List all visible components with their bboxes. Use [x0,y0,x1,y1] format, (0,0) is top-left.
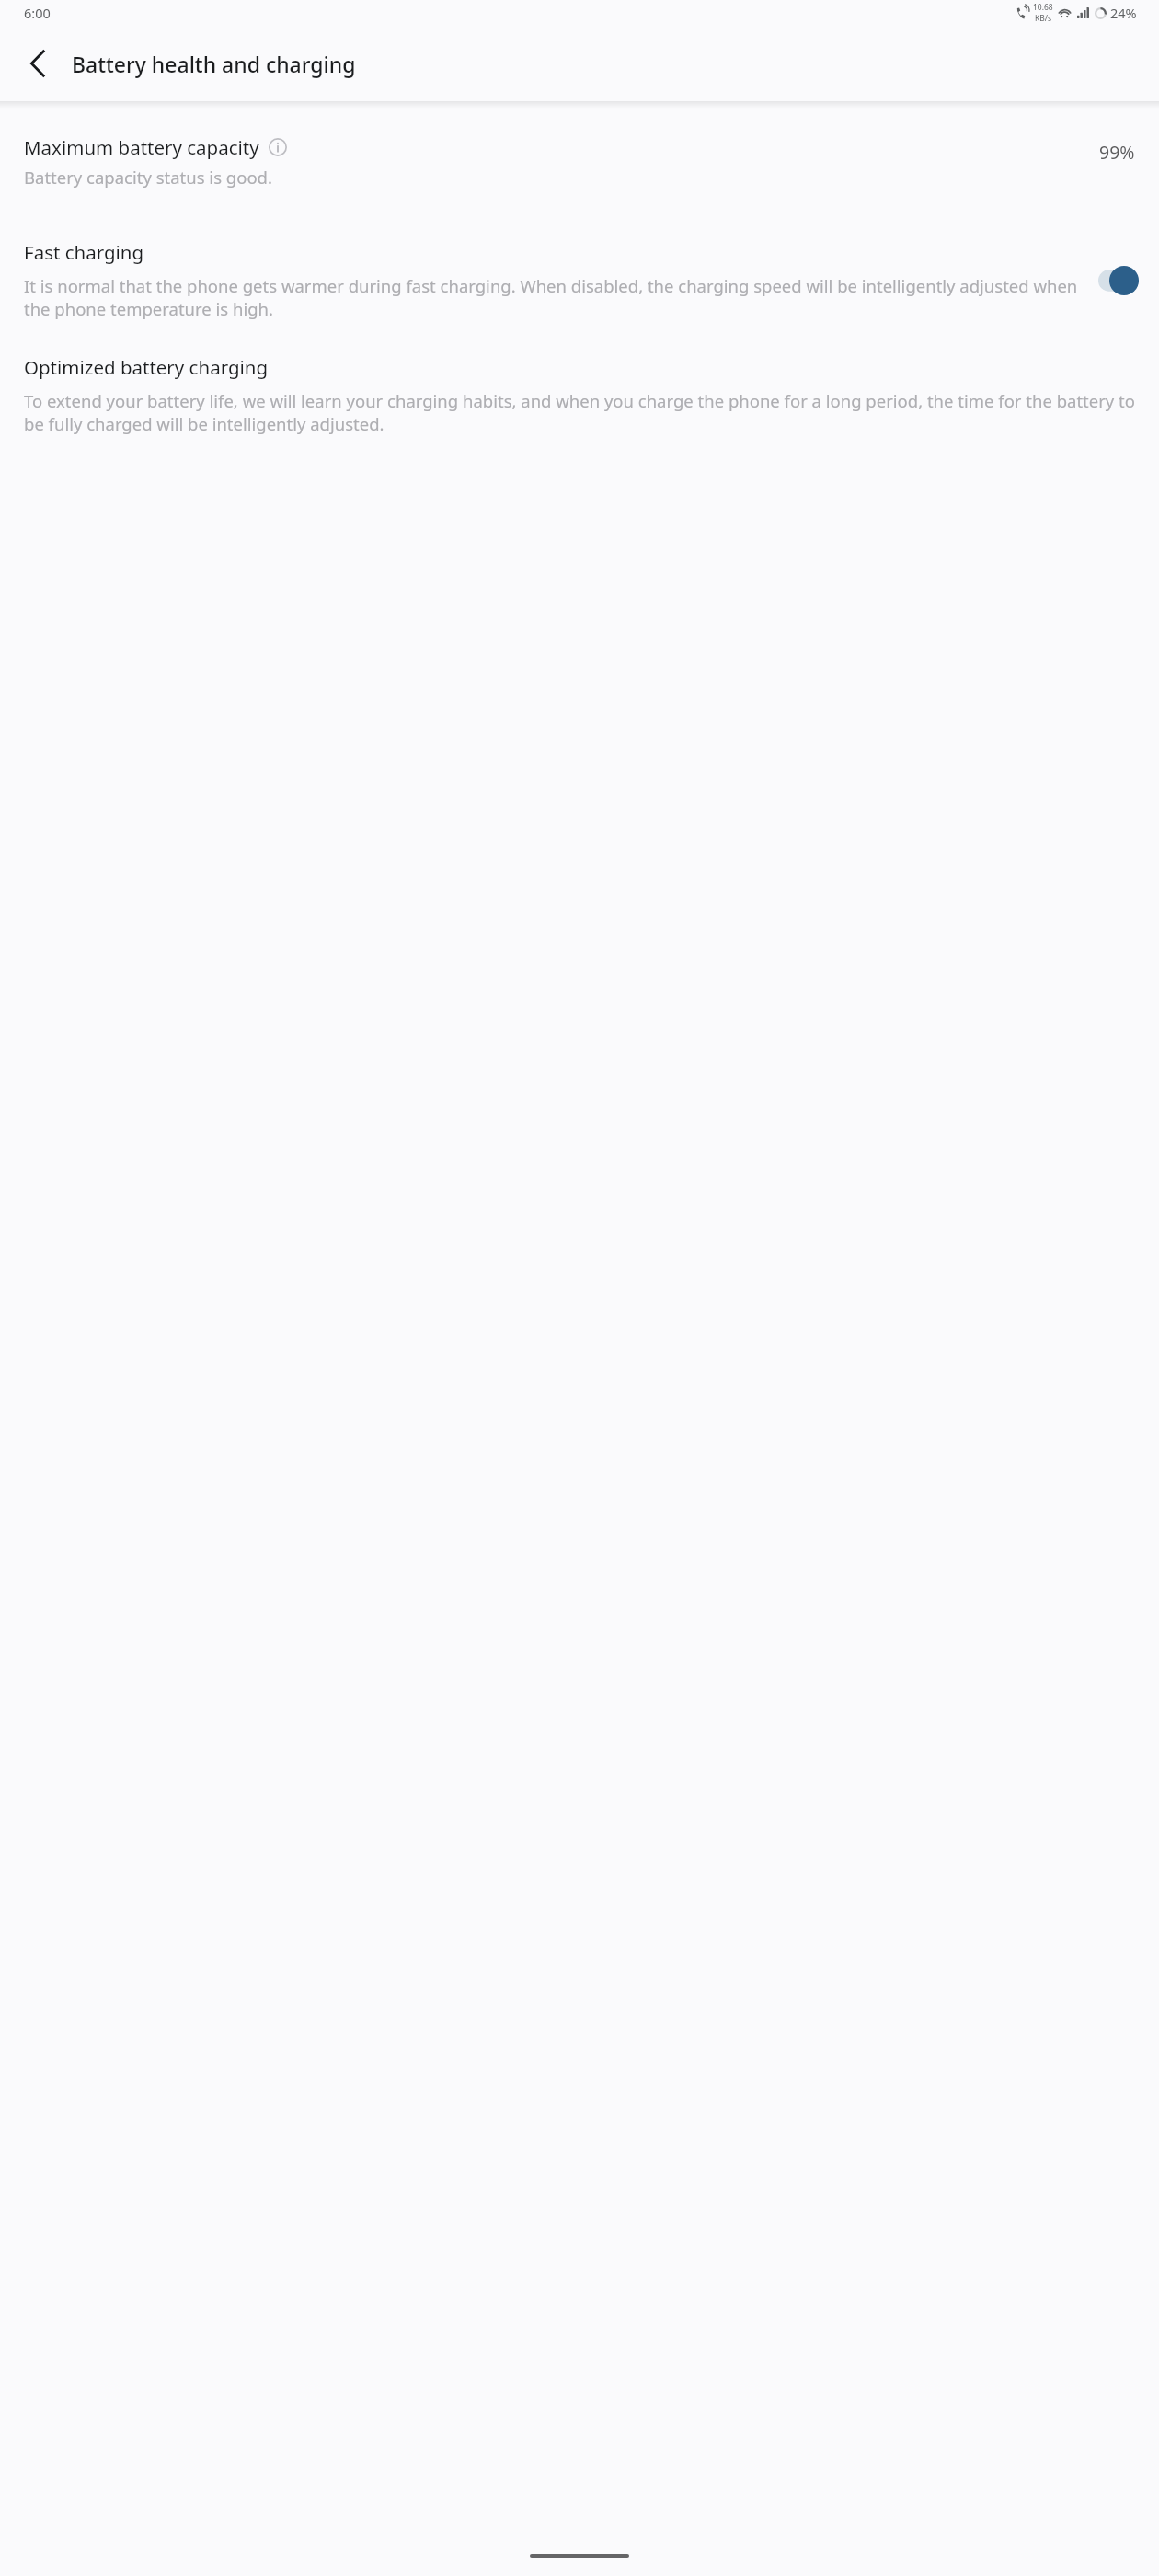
button[interactable]: Back [9,34,68,93]
staticText: Battery health and charging [72,50,356,78]
button[interactable]: Fast charging [0,213,1159,330]
button[interactable]: Maximum battery capacity [0,109,1159,213]
button[interactable]: More information [267,136,289,158]
staticText: To extend your battery life, we will lea… [24,389,1135,436]
staticText: 6:00 [24,4,51,22]
staticText: Battery capacity status is good. [24,166,272,189]
staticText: 24% [1110,4,1137,22]
staticText: Fast charging [24,239,144,265]
button[interactable]: Optimized battery charging [0,330,1159,454]
staticText: 10.68 [1033,2,1053,13]
staticText: KB/s [1035,13,1052,24]
staticText: Optimized battery charging [24,354,269,380]
staticText: Maximum battery capacity [24,134,259,160]
staticText: It is normal that the phone gets warmer … [24,274,1089,321]
staticText: 99% [1099,140,1135,165]
button[interactable]: Fast charging toggle, on [1098,266,1139,295]
